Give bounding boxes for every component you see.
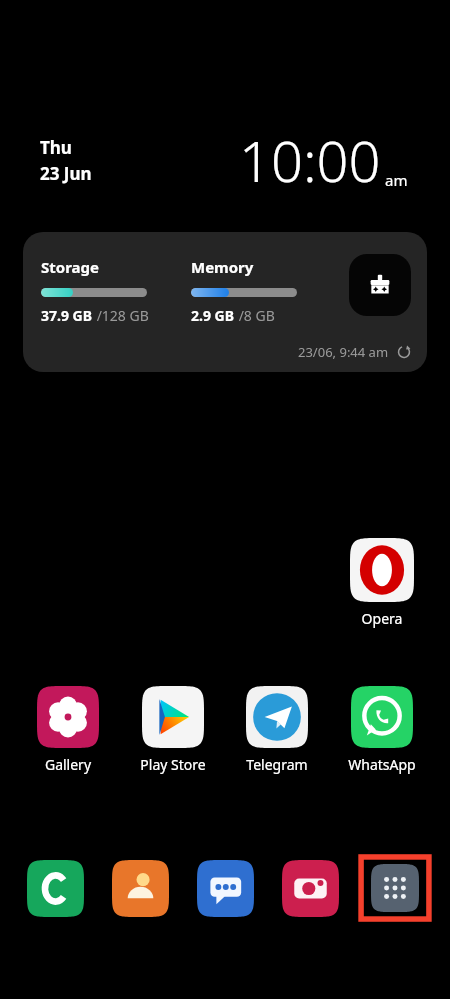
button[interactable]: Thu	[40, 122, 408, 198]
staticText: WhatsApp	[332, 755, 432, 774]
staticText: 37.9 GB	[41, 306, 93, 325]
staticText: Opera	[332, 609, 432, 628]
button[interactable]: Clean storage	[349, 254, 411, 316]
staticText: 23 Jun	[40, 162, 92, 185]
button[interactable]: Gallery	[18, 686, 118, 774]
staticText: Storage	[41, 257, 99, 277]
staticText: am	[385, 170, 408, 190]
staticText: 23/06, 9:44 am	[298, 343, 389, 361]
staticText: 2.9 GB	[191, 306, 235, 325]
staticText: 10:00	[239, 122, 381, 198]
staticText: /8 GB	[235, 306, 275, 325]
button[interactable]: Refresh	[298, 343, 411, 361]
staticText: Telegram	[227, 755, 327, 774]
button[interactable]: Camera	[281, 859, 339, 917]
button[interactable]: Opera	[332, 538, 432, 628]
staticText: Play Store	[123, 755, 223, 774]
button[interactable]: Phone	[26, 859, 84, 917]
staticText: Gallery	[18, 755, 118, 774]
button[interactable]: Storage	[23, 232, 427, 372]
staticText: Thu	[40, 136, 72, 159]
button[interactable]: Play Store	[123, 686, 223, 774]
button[interactable]: Contacts	[111, 859, 169, 917]
button[interactable]: Telegram	[227, 686, 327, 774]
staticText: Memory	[191, 257, 254, 277]
button[interactable]: Messages	[196, 859, 254, 917]
button[interactable]: WhatsApp	[332, 686, 432, 774]
staticText: /128 GB	[93, 306, 149, 325]
button[interactable]: Apps	[366, 859, 424, 917]
